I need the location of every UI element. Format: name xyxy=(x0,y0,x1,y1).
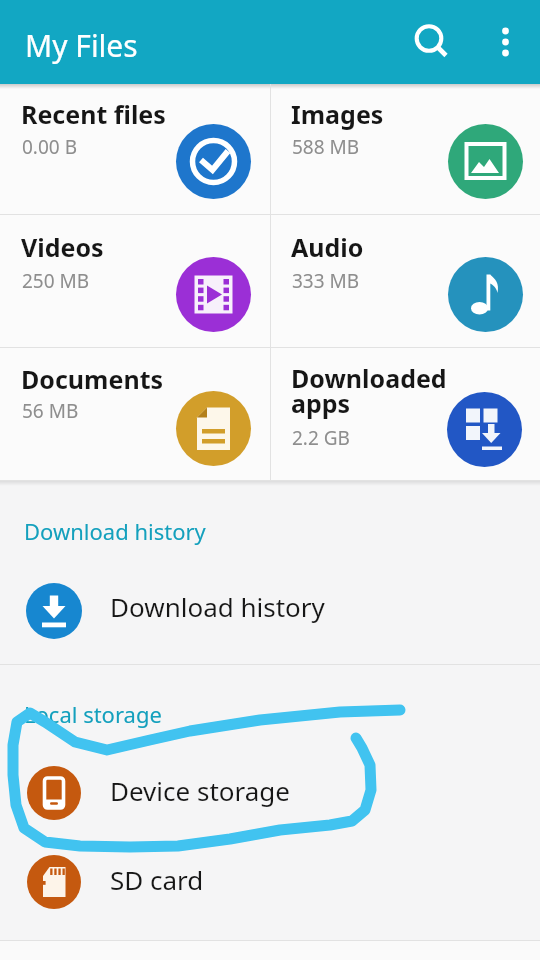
staticText: Download history xyxy=(110,589,325,624)
staticText: Audio xyxy=(291,230,364,264)
staticText: Documents xyxy=(21,362,164,396)
staticText: Local storage xyxy=(24,699,162,729)
button[interactable] xyxy=(27,766,81,820)
button[interactable] xyxy=(270,84,540,214)
staticText: Downloaded xyxy=(291,361,447,395)
staticText: 333 MB xyxy=(292,268,360,294)
staticText: Videos xyxy=(21,230,104,264)
button[interactable] xyxy=(0,570,540,650)
staticText: 250 MB xyxy=(22,268,90,294)
staticText: Device storage xyxy=(110,773,290,808)
button[interactable] xyxy=(0,84,270,214)
staticText: 588 MB xyxy=(292,134,360,160)
staticText: apps xyxy=(291,386,351,420)
button[interactable] xyxy=(26,583,82,639)
staticText: SD card xyxy=(110,862,204,897)
staticText: 2.2 GB xyxy=(292,425,350,451)
button[interactable] xyxy=(405,14,455,68)
button[interactable] xyxy=(0,752,540,834)
button[interactable] xyxy=(0,348,270,480)
button[interactable] xyxy=(270,215,540,347)
staticText: Images xyxy=(291,97,384,131)
staticText: My Files xyxy=(25,25,138,66)
staticText: 0.00 B xyxy=(22,134,77,160)
button[interactable] xyxy=(27,855,81,909)
button[interactable] xyxy=(0,842,540,922)
staticText: Download history xyxy=(24,516,206,546)
button[interactable] xyxy=(483,14,529,70)
staticText: Recent files xyxy=(21,97,166,131)
button[interactable] xyxy=(270,348,540,480)
button[interactable] xyxy=(0,215,270,347)
staticText: 56 MB xyxy=(22,398,79,424)
